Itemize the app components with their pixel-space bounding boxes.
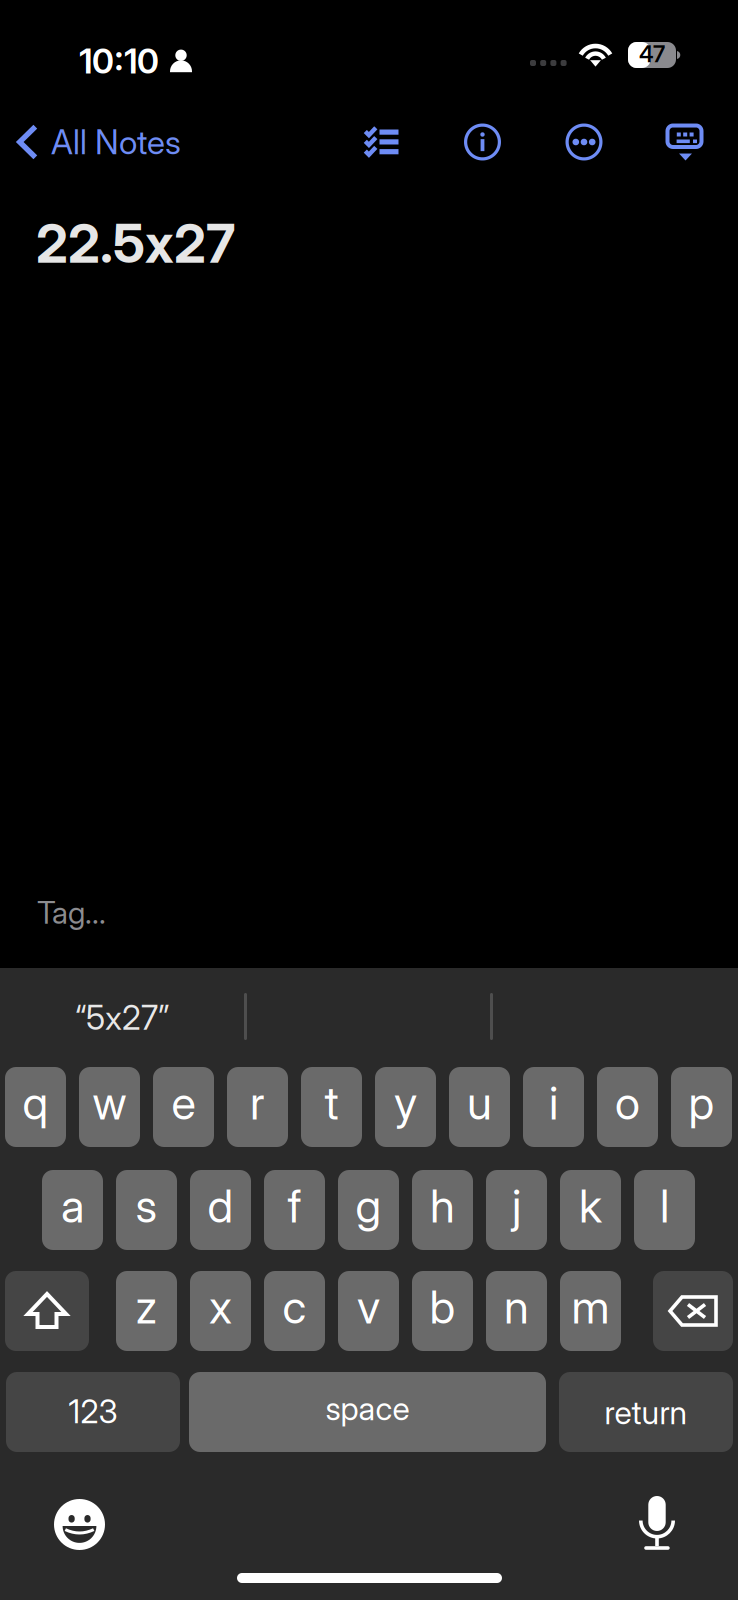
staticText: i [549, 1076, 558, 1130]
staticText: p [688, 1076, 714, 1130]
staticText: g [355, 1179, 381, 1233]
staticText: 22.5x27 [36, 212, 235, 275]
staticText: “5x27” [75, 998, 169, 1037]
staticText: m [571, 1280, 609, 1334]
button[interactable]: z [116, 1271, 177, 1351]
button[interactable]: l [634, 1170, 695, 1250]
button[interactable]: g [338, 1170, 399, 1250]
button[interactable]: 123 [6, 1372, 180, 1452]
staticText: x [209, 1280, 232, 1334]
staticText: 10:10 [79, 40, 159, 82]
button[interactable]: space [189, 1372, 546, 1452]
button[interactable]: x [190, 1271, 251, 1351]
button[interactable]: e [153, 1067, 214, 1147]
button[interactable]: “5x27” [0, 968, 246, 1058]
button[interactable]: Info [432, 104, 533, 180]
staticText: 123 [68, 1392, 117, 1431]
staticText: o [615, 1076, 640, 1130]
staticText: t [324, 1076, 338, 1130]
staticText: u [467, 1076, 492, 1130]
button[interactable]: c [264, 1271, 325, 1351]
staticText: c [282, 1280, 306, 1334]
staticText: z [135, 1280, 157, 1334]
button[interactable]: More [533, 104, 635, 180]
button[interactable]: p [671, 1067, 732, 1147]
button[interactable]: y [375, 1067, 436, 1147]
button[interactable]: return [559, 1372, 733, 1452]
button[interactable]: f [264, 1170, 325, 1250]
staticText: s [135, 1179, 157, 1233]
button[interactable]: d [190, 1170, 251, 1250]
staticText: q [22, 1076, 48, 1130]
button[interactable]: m [560, 1271, 621, 1351]
staticText: Tag... [37, 894, 106, 931]
button[interactable]: s [116, 1170, 177, 1250]
button[interactable]: k [560, 1170, 621, 1250]
button[interactable]: r [227, 1067, 288, 1147]
staticText: a [61, 1179, 84, 1233]
button[interactable]: Hide Keyboard [635, 104, 738, 180]
staticText: All Notes [51, 122, 181, 162]
button[interactable]: Delete [653, 1271, 733, 1351]
staticText: h [430, 1179, 455, 1233]
staticText: n [504, 1280, 529, 1334]
button[interactable]: Emoji [54, 1499, 105, 1550]
button[interactable]: Dictation [639, 1496, 677, 1550]
staticText: 47 [639, 40, 665, 68]
button[interactable]: j [486, 1170, 547, 1250]
staticText: return [604, 1393, 687, 1432]
staticText: l [660, 1179, 669, 1233]
staticText: d [207, 1179, 233, 1233]
button[interactable]: h [412, 1170, 473, 1250]
button[interactable]: i [523, 1067, 584, 1147]
button[interactable]: b [412, 1271, 473, 1351]
button[interactable]: q [5, 1067, 66, 1147]
button[interactable]: n [486, 1271, 547, 1351]
staticText: k [579, 1179, 602, 1233]
button[interactable]: u [449, 1067, 510, 1147]
staticText: w [92, 1076, 126, 1130]
staticText: j [512, 1179, 521, 1233]
button[interactable]: Shift [5, 1271, 89, 1351]
button[interactable]: o [597, 1067, 658, 1147]
staticText: space [325, 1389, 409, 1428]
button[interactable]: All Notes [0, 106, 197, 178]
staticText: v [357, 1280, 380, 1334]
button[interactable]: Checklist [331, 104, 432, 180]
button[interactable]: t [301, 1067, 362, 1147]
button[interactable]: w [79, 1067, 140, 1147]
staticText: b [429, 1280, 455, 1334]
staticText: f [287, 1179, 301, 1233]
staticText: y [394, 1076, 417, 1130]
button[interactable]: a [42, 1170, 103, 1250]
button[interactable]: v [338, 1271, 399, 1351]
staticText: e [171, 1076, 195, 1130]
staticText: r [250, 1076, 265, 1130]
